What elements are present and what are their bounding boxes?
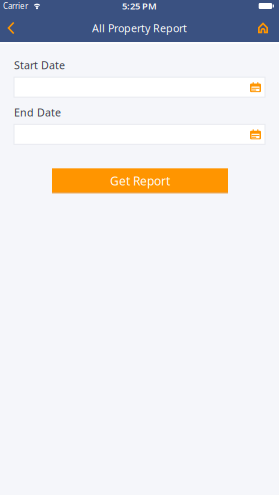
button[interactable]: Start date bbox=[14, 77, 265, 97]
staticText: Carrier bbox=[3, 1, 28, 11]
staticText: Start Date bbox=[14, 58, 65, 72]
staticText: 5:25 PM bbox=[122, 0, 157, 12]
button[interactable]: Back bbox=[3, 16, 20, 42]
staticText: All Property Report bbox=[92, 21, 187, 35]
button[interactable]: Home bbox=[252, 16, 274, 42]
staticText: Get Report bbox=[110, 173, 170, 189]
staticText: End Date bbox=[14, 105, 61, 119]
button[interactable]: Get Report bbox=[52, 168, 228, 193]
button[interactable]: End date bbox=[14, 124, 265, 144]
